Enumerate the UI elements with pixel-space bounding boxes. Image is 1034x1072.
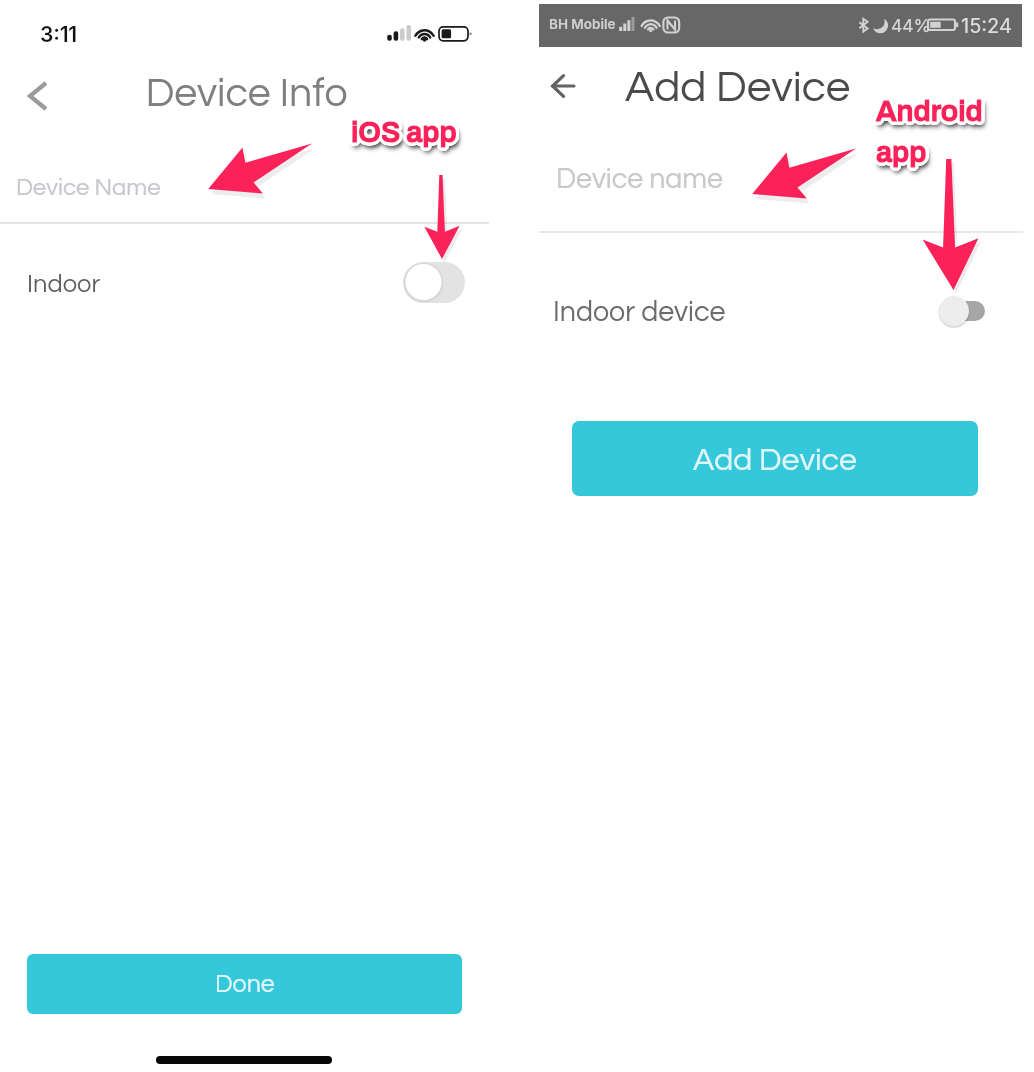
- staticText: app: [879, 138, 930, 170]
- staticText: iOS app: [351, 119, 457, 151]
- staticText: Android: [877, 101, 984, 133]
- staticText: app: [877, 140, 928, 172]
- staticText: iOS app: [351, 123, 457, 155]
- staticText: 3:11: [40, 22, 78, 47]
- staticText: Android: [875, 94, 982, 126]
- staticText: iOS app: [352, 121, 458, 153]
- staticText: iOS app: [354, 121, 460, 153]
- staticText: iOS app: [354, 119, 460, 151]
- staticText: Android: [876, 100, 983, 132]
- staticText: app: [875, 134, 926, 166]
- staticText: app: [880, 141, 931, 173]
- staticText: Android: [878, 100, 985, 132]
- staticText: app: [873, 138, 924, 170]
- staticText: Android: [879, 100, 986, 132]
- staticText: Android: [877, 99, 984, 131]
- button[interactable]: Back: [7, 70, 62, 120]
- staticText: app: [874, 138, 925, 170]
- staticText: app: [881, 142, 932, 174]
- staticText: app: [875, 138, 926, 170]
- staticText: Android: [876, 99, 983, 131]
- staticText: Add Device: [693, 444, 857, 477]
- staticText: iOS app: [355, 119, 461, 151]
- staticText: iOS app: [353, 118, 459, 150]
- staticText: Android: [878, 97, 985, 129]
- staticText: app: [877, 140, 928, 172]
- staticText: app: [876, 134, 927, 166]
- staticText: Android: [880, 98, 987, 130]
- staticText: iOS app: [350, 114, 456, 146]
- staticText: Indoor device: [553, 298, 726, 327]
- staticText: Android: [873, 97, 980, 129]
- staticText: Android: [879, 97, 986, 129]
- staticText: Indoor: [27, 271, 101, 297]
- staticText: app: [874, 135, 925, 167]
- staticText: iOS app: [352, 114, 458, 146]
- staticText: Android: [877, 97, 984, 129]
- staticText: Android: [877, 102, 984, 134]
- staticText: iOS app: [352, 119, 458, 151]
- staticText: iOS app: [352, 120, 458, 152]
- staticText: Android: [880, 99, 987, 131]
- staticText: Android: [878, 103, 985, 135]
- staticText: iOS app: [350, 120, 456, 152]
- staticText: app: [877, 136, 928, 168]
- staticText: app: [873, 136, 924, 168]
- button[interactable]: Indoor device toggle: [932, 288, 992, 332]
- staticText: app: [877, 144, 928, 176]
- staticText: iOS app: [353, 115, 459, 147]
- staticText: Android: [877, 97, 984, 129]
- staticText: iOS app: [352, 118, 458, 150]
- staticText: Android: [876, 95, 983, 127]
- button[interactable]: Done: [27, 954, 462, 1014]
- staticText: app: [876, 139, 927, 171]
- staticText: app: [879, 137, 930, 169]
- staticText: iOS app: [351, 121, 457, 153]
- staticText: app: [877, 139, 928, 171]
- staticText: Android: [877, 99, 984, 131]
- staticText: Android: [881, 101, 988, 133]
- button[interactable]: Indoor toggle: [403, 262, 465, 303]
- staticText: iOS app: [351, 120, 457, 152]
- staticText: iOS app: [348, 116, 454, 148]
- staticText: Android: [875, 101, 982, 133]
- staticText: Android: [875, 96, 982, 128]
- button[interactable]: Back: [536, 61, 586, 111]
- staticText: app: [875, 136, 926, 168]
- staticText: app: [878, 138, 929, 170]
- staticText: iOS app: [351, 117, 457, 149]
- staticText: Android: [876, 93, 983, 125]
- staticText: Android: [879, 96, 986, 128]
- staticText: Device Name: [16, 175, 161, 200]
- staticText: Android: [875, 100, 982, 132]
- staticText: Android: [875, 98, 982, 130]
- staticText: iOS app: [356, 121, 462, 153]
- staticText: Android: [874, 98, 981, 130]
- staticText: iOS app: [350, 118, 456, 150]
- staticText: app: [876, 139, 927, 171]
- staticText: Android: [875, 93, 982, 125]
- button[interactable]: Add Device: [572, 421, 978, 496]
- staticText: Device name: [556, 165, 723, 194]
- staticText: iOS app: [351, 120, 457, 152]
- staticText: Android: [881, 100, 988, 132]
- staticText: iOS app: [353, 116, 459, 148]
- staticText: Android: [879, 95, 986, 127]
- staticText: iOS app: [350, 121, 456, 153]
- staticText: iOS app: [350, 117, 456, 149]
- staticText: iOS app: [356, 120, 462, 152]
- staticText: iOS app: [352, 122, 458, 154]
- staticText: Android: [874, 95, 981, 127]
- staticText: app: [879, 140, 930, 172]
- staticText: iOS app: [353, 120, 459, 152]
- staticText: app: [880, 143, 931, 175]
- staticText: iOS app: [354, 117, 460, 149]
- staticText: Android: [881, 99, 988, 131]
- staticText: app: [875, 140, 926, 172]
- staticText: app: [877, 143, 928, 175]
- staticText: iOS app: [352, 120, 458, 152]
- staticText: iOS app: [350, 122, 456, 154]
- staticText: app: [876, 135, 927, 167]
- staticText: app: [876, 140, 927, 172]
- staticText: iOS app: [354, 124, 460, 156]
